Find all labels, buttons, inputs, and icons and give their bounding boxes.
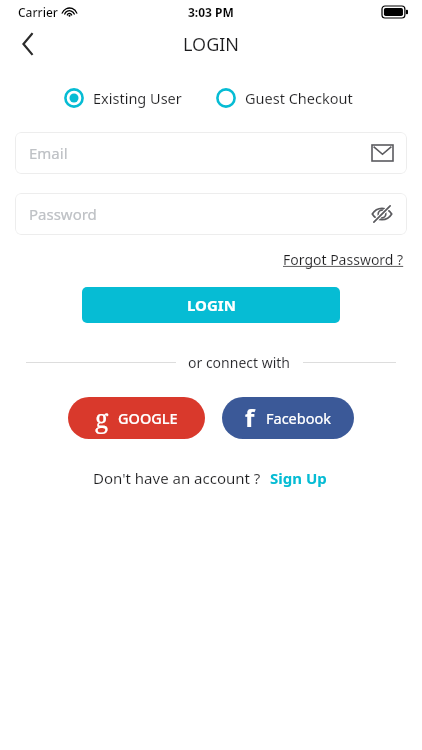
button[interactable]: Guest Checkout: [214, 84, 355, 112]
staticText: 3:03 PM: [188, 4, 234, 20]
staticText: LOGIN: [187, 295, 236, 315]
staticText: GOOGLE: [118, 408, 178, 428]
other: Email: [372, 145, 393, 161]
staticText: Forgot Password ?: [283, 250, 404, 269]
staticText: Sign Up: [270, 468, 327, 488]
button[interactable]: f: [222, 397, 354, 439]
button[interactable]: Email: [15, 132, 407, 174]
button[interactable]: Existing User: [62, 84, 184, 112]
staticText: f: [245, 401, 255, 434]
other: Show password: [371, 205, 393, 223]
button[interactable]: g: [68, 397, 205, 439]
staticText: Existing User: [93, 88, 182, 108]
staticText: Email: [29, 143, 68, 163]
staticText: Don't have an account ?: [93, 468, 261, 488]
button[interactable]: Password: [15, 193, 407, 235]
staticText: g: [95, 401, 109, 435]
staticText: LOGIN: [183, 32, 240, 57]
staticText: Guest Checkout: [245, 88, 353, 108]
staticText: Carrier: [18, 4, 58, 20]
staticText: Password: [29, 204, 97, 224]
staticText: or connect with: [188, 353, 291, 372]
button[interactable]: Sign Up: [268, 465, 329, 491]
staticText: Facebook: [266, 408, 332, 428]
button[interactable]: LOGIN: [82, 287, 340, 323]
button[interactable]: Back: [8, 24, 48, 64]
button[interactable]: Forgot Password ?: [281, 247, 406, 272]
